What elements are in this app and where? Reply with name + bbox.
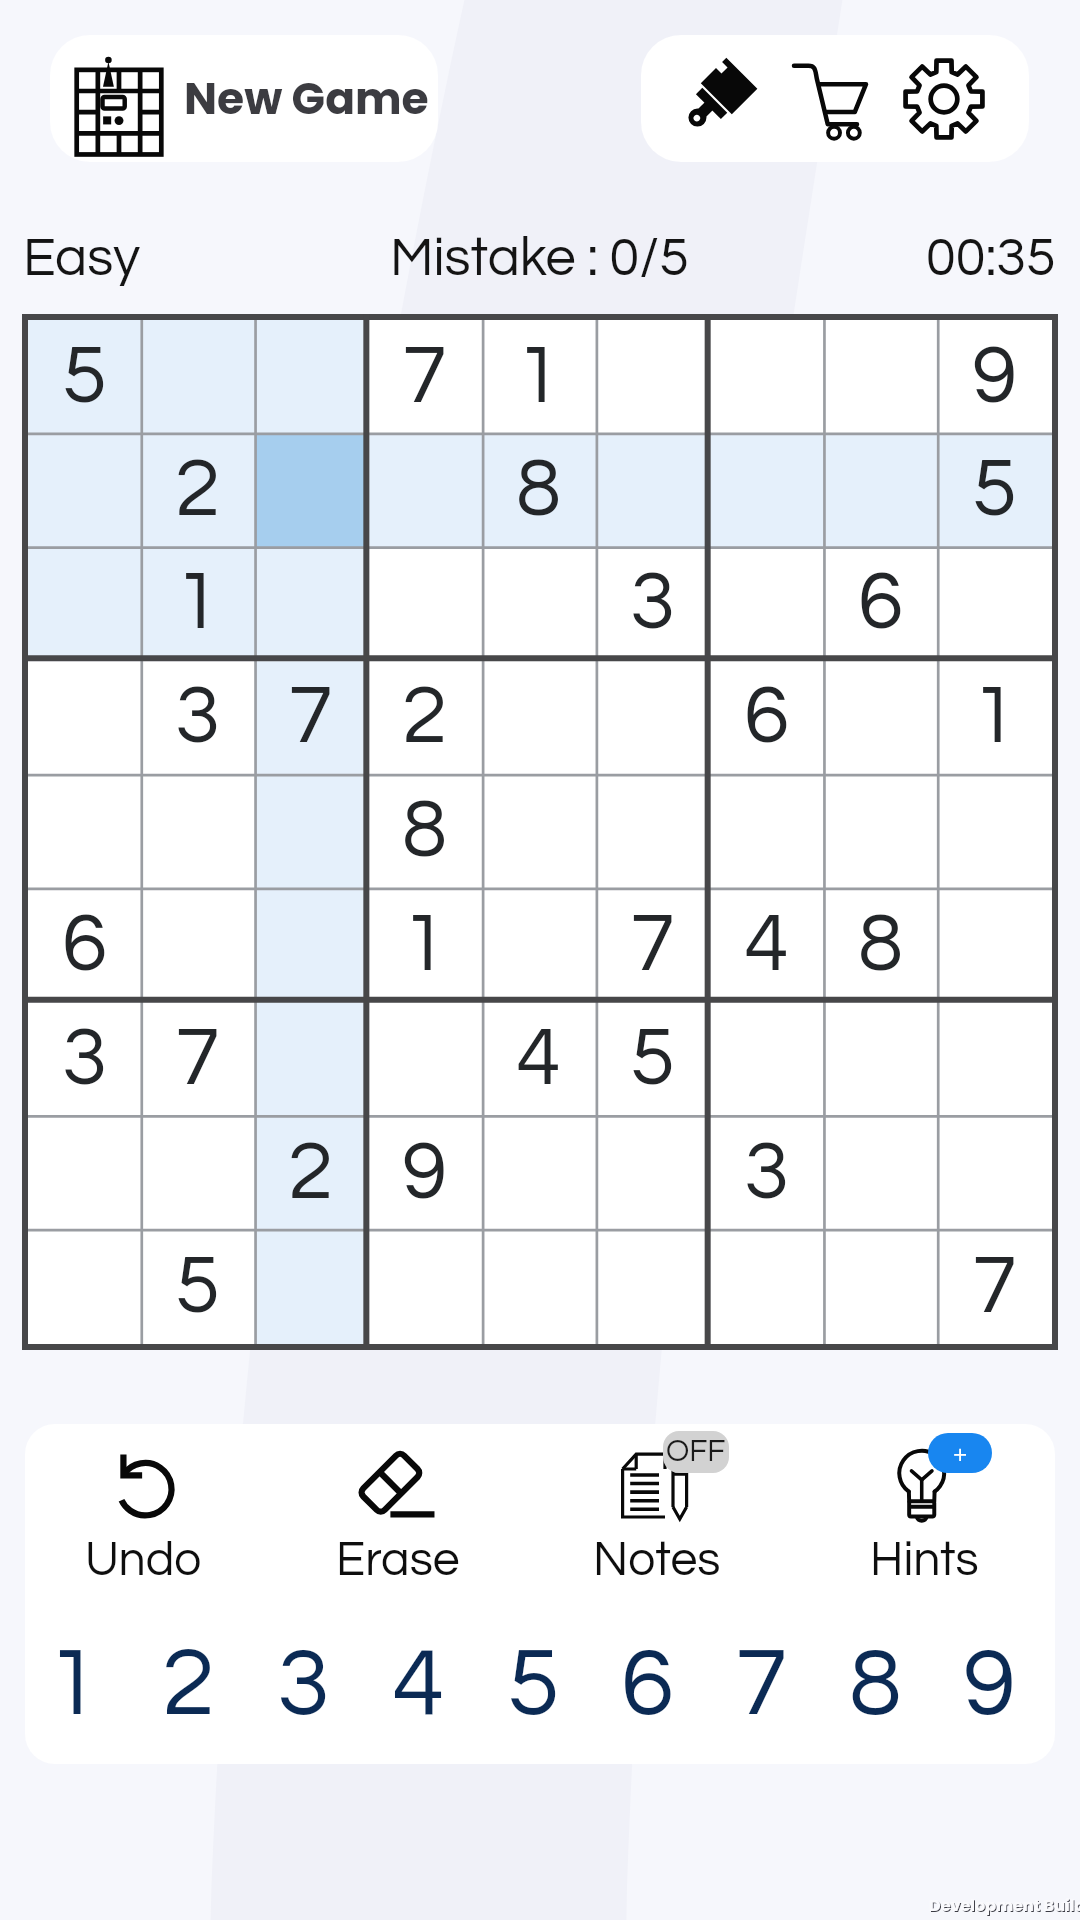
button[interactable] bbox=[368, 546, 482, 660]
button[interactable] bbox=[254, 888, 368, 1002]
button[interactable] bbox=[938, 1116, 1052, 1230]
button[interactable]: 7 bbox=[596, 888, 710, 1002]
button[interactable]: 7 bbox=[368, 320, 482, 433]
button[interactable]: 2 bbox=[131, 1604, 246, 1764]
button[interactable]: 7 bbox=[141, 1002, 254, 1116]
button[interactable] bbox=[28, 546, 141, 660]
button[interactable]: 1 bbox=[368, 888, 482, 1002]
button[interactable]: 8 bbox=[818, 1604, 932, 1764]
button[interactable]: 5 bbox=[938, 433, 1052, 546]
button[interactable]: New Game bbox=[50, 35, 438, 162]
button[interactable]: 1 bbox=[25, 1604, 131, 1764]
button[interactable] bbox=[254, 774, 368, 888]
button[interactable] bbox=[254, 433, 368, 546]
button[interactable] bbox=[824, 320, 938, 433]
button[interactable] bbox=[824, 1116, 938, 1230]
button[interactable] bbox=[596, 320, 710, 433]
button[interactable] bbox=[596, 1230, 710, 1344]
button[interactable]: 3 bbox=[710, 1116, 824, 1230]
button[interactable]: 7 bbox=[938, 1230, 1052, 1344]
button[interactable] bbox=[141, 888, 254, 1002]
button[interactable] bbox=[710, 320, 824, 433]
button[interactable]: 2 bbox=[368, 660, 482, 774]
button[interactable]: 7 bbox=[254, 660, 368, 774]
button[interactable]: Shop bbox=[775, 35, 885, 162]
button[interactable] bbox=[368, 1002, 482, 1116]
button[interactable]: 9 bbox=[938, 320, 1052, 433]
button[interactable]: 1 bbox=[938, 660, 1052, 774]
button[interactable] bbox=[824, 774, 938, 888]
button[interactable]: Hints bbox=[814, 1430, 1034, 1580]
button[interactable] bbox=[824, 1230, 938, 1344]
button[interactable]: 3 bbox=[246, 1604, 361, 1764]
button[interactable]: 4 bbox=[710, 888, 824, 1002]
button[interactable]: 5 bbox=[596, 1002, 710, 1116]
button[interactable]: 6 bbox=[590, 1604, 704, 1764]
staticText: 5 bbox=[62, 335, 108, 419]
button[interactable]: 4 bbox=[361, 1604, 476, 1764]
button[interactable]: 2 bbox=[254, 1116, 368, 1230]
button[interactable] bbox=[482, 774, 596, 888]
button[interactable] bbox=[254, 1002, 368, 1116]
button[interactable]: 5 bbox=[141, 1230, 254, 1344]
button[interactable]: 3 bbox=[141, 660, 254, 774]
staticText: + bbox=[953, 1440, 968, 1467]
button[interactable] bbox=[824, 433, 938, 546]
button[interactable] bbox=[596, 774, 710, 888]
button[interactable] bbox=[938, 546, 1052, 660]
button[interactable] bbox=[482, 1116, 596, 1230]
button[interactable] bbox=[254, 1230, 368, 1344]
button[interactable]: 4 bbox=[482, 1002, 596, 1116]
button[interactable] bbox=[710, 433, 824, 546]
button[interactable]: 9 bbox=[368, 1116, 482, 1230]
button[interactable] bbox=[710, 774, 824, 888]
button[interactable]: Undo bbox=[33, 1430, 253, 1580]
button[interactable] bbox=[824, 1002, 938, 1116]
button[interactable] bbox=[824, 660, 938, 774]
button[interactable]: 5 bbox=[28, 320, 141, 433]
button[interactable] bbox=[368, 433, 482, 546]
button[interactable]: 5 bbox=[476, 1604, 590, 1764]
button[interactable] bbox=[710, 1002, 824, 1116]
button[interactable]: 3 bbox=[28, 1002, 141, 1116]
button[interactable]: 1 bbox=[141, 546, 254, 660]
button[interactable] bbox=[710, 546, 824, 660]
button[interactable]: 6 bbox=[824, 546, 938, 660]
button[interactable]: Erase bbox=[288, 1430, 508, 1580]
button[interactable]: 3 bbox=[596, 546, 710, 660]
button[interactable]: 8 bbox=[824, 888, 938, 1002]
button[interactable]: 8 bbox=[482, 433, 596, 546]
button[interactable] bbox=[141, 320, 254, 433]
button[interactable] bbox=[596, 660, 710, 774]
button[interactable] bbox=[254, 546, 368, 660]
button[interactable] bbox=[938, 774, 1052, 888]
button[interactable]: 9 bbox=[932, 1604, 1046, 1764]
button[interactable]: 8 bbox=[368, 774, 482, 888]
button[interactable]: 6 bbox=[28, 888, 141, 1002]
button[interactable]: Settings bbox=[889, 35, 999, 162]
button[interactable]: 6 bbox=[710, 660, 824, 774]
button[interactable] bbox=[28, 433, 141, 546]
button[interactable] bbox=[596, 433, 710, 546]
button[interactable]: Themes bbox=[661, 35, 771, 162]
button[interactable]: 7 bbox=[704, 1604, 818, 1764]
button[interactable] bbox=[254, 320, 368, 433]
button[interactable]: Notes bbox=[547, 1430, 767, 1580]
button[interactable] bbox=[710, 1230, 824, 1344]
button[interactable] bbox=[28, 1230, 141, 1344]
button[interactable] bbox=[141, 1116, 254, 1230]
button[interactable] bbox=[938, 1002, 1052, 1116]
button[interactable] bbox=[482, 888, 596, 1002]
button[interactable] bbox=[28, 774, 141, 888]
button[interactable] bbox=[482, 546, 596, 660]
button[interactable]: 2 bbox=[141, 433, 254, 546]
button[interactable] bbox=[28, 1116, 141, 1230]
button[interactable] bbox=[368, 1230, 482, 1344]
button[interactable] bbox=[482, 1230, 596, 1344]
button[interactable] bbox=[482, 660, 596, 774]
button[interactable] bbox=[596, 1116, 710, 1230]
button[interactable] bbox=[938, 888, 1052, 1002]
button[interactable]: 1 bbox=[482, 320, 596, 433]
button[interactable] bbox=[141, 774, 254, 888]
button[interactable] bbox=[28, 660, 141, 774]
